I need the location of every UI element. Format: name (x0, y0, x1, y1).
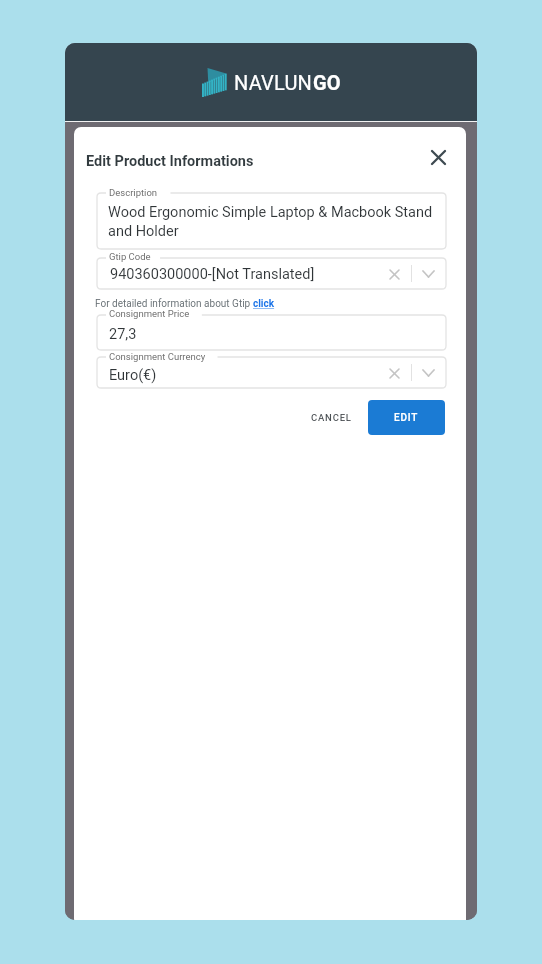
button[interactable]: EDIT (368, 400, 445, 435)
button[interactable]: Clear (383, 263, 405, 285)
button[interactable]: Open dropdown (416, 361, 440, 385)
button[interactable]: Open dropdown (416, 262, 440, 286)
button[interactable]: Close (424, 143, 452, 171)
staticText: Gtip Code (109, 251, 151, 262)
button[interactable]: Clear (383, 362, 405, 384)
button[interactable]: click (253, 298, 275, 310)
staticText: Consignment Price (109, 308, 190, 319)
staticText: 27,3 (109, 326, 137, 343)
staticText: For detailed information about Gtip (95, 298, 253, 310)
staticText: Wood Ergonomic Simple Laptop & Macbook S… (108, 204, 433, 240)
staticText: Consignment Currency (109, 351, 206, 362)
staticText: Edit Product Informations (86, 153, 254, 170)
staticText: 940360300000-[Not Translated] (110, 266, 315, 283)
staticText: EDIT (394, 412, 419, 424)
staticText: GO (313, 71, 341, 94)
staticText: Euro(€) (109, 367, 157, 384)
staticText: Description (109, 187, 158, 198)
button[interactable]: CANCEL (301, 400, 362, 435)
staticText: NAVLUN (234, 71, 313, 94)
staticText: CANCEL (311, 412, 352, 423)
